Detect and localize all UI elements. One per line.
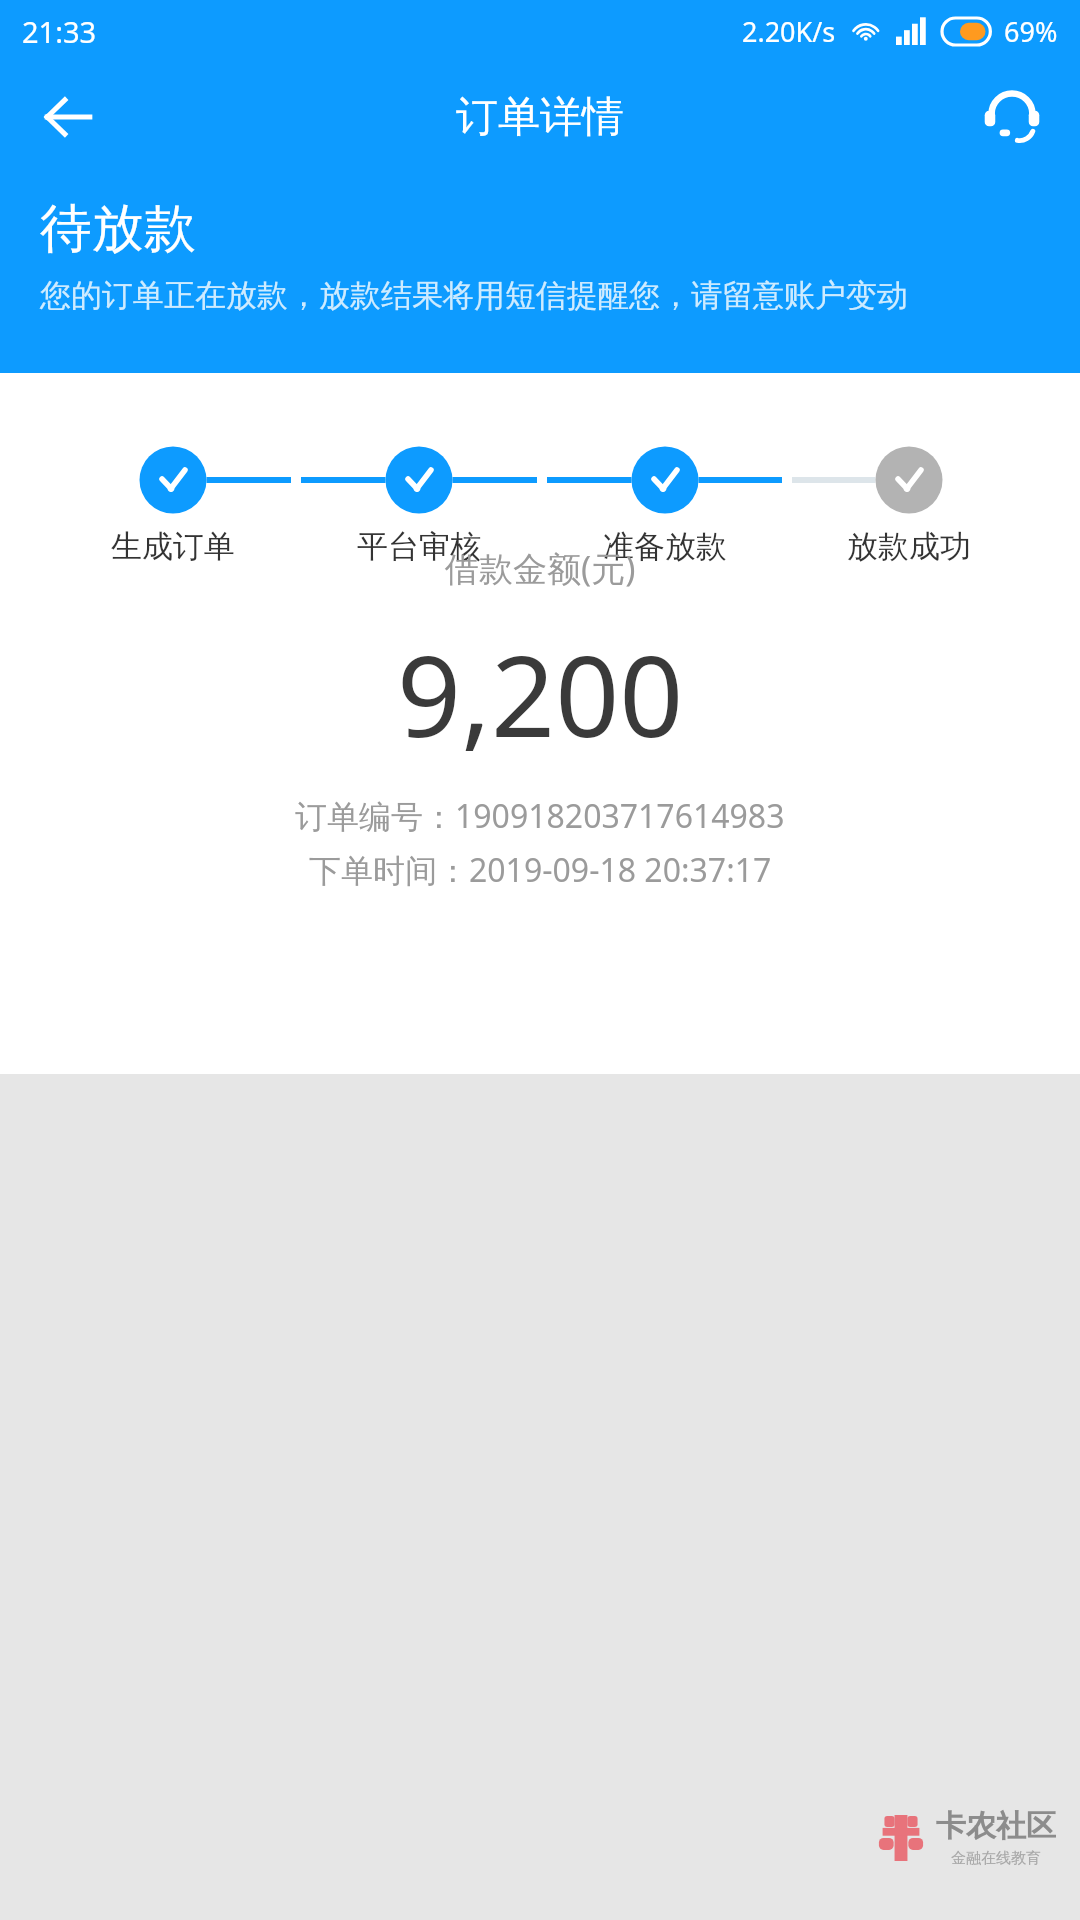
staticText: 准备放款 [603, 527, 727, 566]
staticText: 借款金额(元) [445, 545, 636, 591]
staticText: 平台审核 [357, 527, 481, 566]
staticText: 2.20K/s [742, 13, 836, 50]
staticText: 订单编号：190918203717614983 [295, 794, 785, 838]
staticText: 订单详情 [456, 91, 624, 144]
button[interactable]: Customer service [966, 71, 1058, 163]
staticText: 69% [1004, 13, 1058, 50]
staticText: 9,200 [397, 617, 684, 770]
staticText: 待放款 [40, 196, 196, 262]
staticText: 放款成功 [847, 527, 971, 566]
staticText: 卡农社区 [936, 1807, 1056, 1845]
staticText: 生成订单 [111, 527, 235, 566]
staticText: 金融在线教育 [951, 1849, 1041, 1868]
button[interactable]: Back [22, 71, 114, 163]
staticText: 下单时间：2019-09-18 20:37:17 [309, 848, 772, 892]
staticText: 您的订单正在放款，放款结果将用短信提醒您，请留意账户变动 [40, 276, 908, 315]
staticText: 21:33 [22, 12, 97, 51]
